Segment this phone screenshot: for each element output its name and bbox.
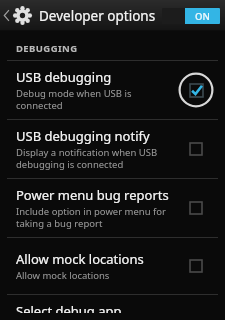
staticText: Select debug app (16, 302, 122, 313)
button[interactable]: USB debugging (0, 61, 225, 119)
staticText: DEBUGGING (16, 42, 78, 55)
button[interactable]: Navigate up, Developer options (0, 6, 160, 25)
staticText: USB debugging notify (16, 127, 150, 145)
button[interactable]: Developer options on/off toggle (160, 4, 222, 28)
staticText: Debug mode when USB is connected (16, 87, 132, 112)
staticText: Allow mock locations (16, 250, 144, 268)
staticText: Include option in power menu for taking … (16, 205, 167, 230)
staticText: Allow mock locations (16, 269, 110, 282)
button[interactable]: Power menu bug reports (0, 179, 225, 237)
staticText: ON (195, 10, 210, 23)
button[interactable]: USB debugging notify (0, 120, 225, 178)
button[interactable]: Select debug app (0, 295, 225, 320)
staticText: USB debugging (16, 68, 112, 86)
staticText: Power menu bug reports (16, 186, 169, 204)
staticText: Developer options (39, 7, 156, 25)
staticText: Display a notification when USB debuggin… (16, 146, 158, 171)
button[interactable]: Allow mock locations (0, 238, 225, 294)
